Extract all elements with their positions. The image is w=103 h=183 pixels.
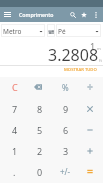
button[interactable]: Plus: [77, 141, 103, 162]
staticText: m: [97, 46, 101, 51]
button[interactable]: More options: [88, 7, 103, 22]
button[interactable]: 5: [25, 120, 51, 141]
staticText: 2: [37, 145, 43, 157]
staticText: 3: [63, 145, 69, 157]
staticText: 7: [12, 103, 18, 115]
staticText: 5: [37, 124, 43, 136]
staticText: 9: [63, 103, 69, 115]
staticText: Metro: [3, 27, 22, 36]
button[interactable]: Minus: [77, 120, 103, 141]
button[interactable]: Metro: [1, 24, 45, 37]
staticText: C: [12, 81, 18, 93]
staticText: 0: [37, 166, 43, 178]
button[interactable]: 3: [51, 141, 77, 162]
button[interactable]: 0: [25, 162, 51, 183]
staticText: 6: [63, 124, 69, 136]
button[interactable]: Pé: [56, 24, 101, 37]
button[interactable]: %: [51, 77, 77, 99]
staticText: .: [13, 166, 16, 178]
button[interactable]: .: [0, 162, 25, 183]
button[interactable]: 6: [51, 120, 77, 141]
button[interactable]: C: [0, 77, 25, 99]
button[interactable]: Backspace: [25, 77, 51, 99]
staticText: +/-: [60, 166, 71, 177]
button[interactable]: Divide: [77, 77, 103, 99]
staticText: Comprimento: [19, 11, 54, 18]
button[interactable]: Swap units: [47, 24, 55, 37]
button[interactable]: Search: [66, 7, 79, 22]
button[interactable]: Favorite: [79, 7, 88, 22]
button[interactable]: +/-: [51, 162, 77, 183]
staticText: 1: [90, 40, 96, 52]
staticText: 3.2808: [48, 44, 99, 66]
staticText: ft: [99, 58, 102, 63]
button[interactable]: 7: [0, 99, 25, 120]
staticText: 8: [37, 103, 43, 115]
staticText: Pé: [58, 27, 66, 36]
staticText: MOSTRAR TUDO: [64, 67, 97, 73]
button[interactable]: 1: [0, 141, 25, 162]
staticText: 1: [12, 145, 18, 157]
staticText: 4: [12, 124, 18, 136]
button[interactable]: 9: [51, 99, 77, 120]
button[interactable]: Multiply: [77, 99, 103, 120]
staticText: %: [62, 82, 69, 93]
button[interactable]: Menu: [0, 7, 15, 22]
button[interactable]: MOSTRAR TUDO: [58, 66, 103, 74]
button[interactable]: 8: [25, 99, 51, 120]
button[interactable]: Equals: [77, 162, 103, 183]
button[interactable]: 2: [25, 141, 51, 162]
button[interactable]: 4: [0, 120, 25, 141]
